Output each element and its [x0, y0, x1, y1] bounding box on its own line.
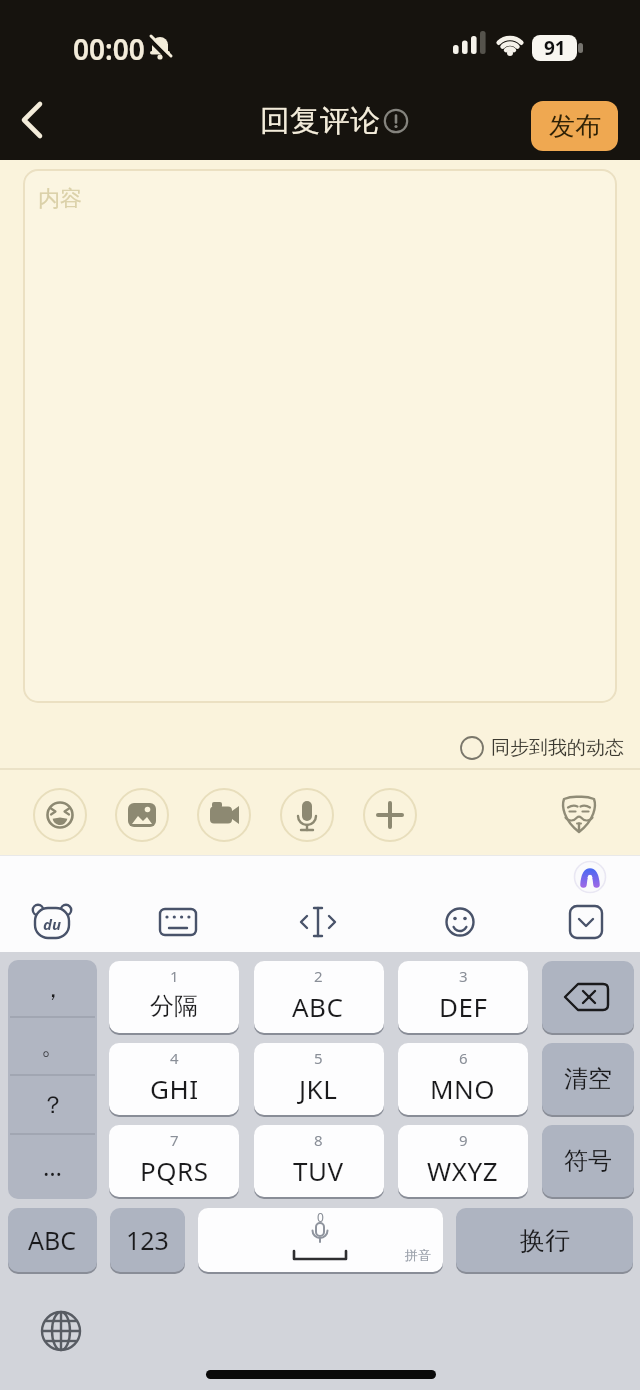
staticText: MNO	[430, 1071, 496, 1106]
button[interactable]	[146, 34, 174, 62]
button[interactable]: ABC	[8, 1208, 97, 1272]
staticText: 同步到我的动态	[491, 736, 624, 760]
staticText: du	[43, 914, 61, 934]
staticText: 。	[41, 1031, 65, 1061]
button[interactable]	[568, 904, 604, 940]
staticText: PQRS	[140, 1153, 209, 1188]
staticText: 2	[314, 966, 323, 984]
staticText: 91	[544, 35, 566, 61]
button[interactable]	[158, 902, 198, 942]
button[interactable]	[34, 789, 86, 841]
button[interactable]	[109, 1043, 239, 1115]
button[interactable]	[364, 789, 416, 841]
staticText: 分隔	[150, 991, 198, 1021]
button[interactable]	[449, 28, 489, 58]
button[interactable]	[398, 1125, 528, 1197]
staticText: 3	[459, 966, 468, 984]
button[interactable]	[10, 96, 54, 144]
button[interactable]: 清空	[542, 1043, 634, 1115]
button[interactable]	[254, 961, 384, 1033]
staticText: 6	[459, 1048, 468, 1066]
staticText: 拼音	[405, 1247, 431, 1263]
staticText: 0	[317, 1209, 324, 1223]
button[interactable]	[109, 1125, 239, 1197]
staticText: ，	[41, 974, 65, 1004]
button[interactable]	[440, 902, 480, 942]
staticText: 发布	[549, 110, 601, 143]
staticText: WXYZ	[427, 1153, 499, 1188]
button[interactable]	[541, 961, 633, 1033]
staticText: 换行	[520, 1225, 570, 1256]
button[interactable]	[398, 961, 528, 1033]
button[interactable]	[383, 108, 409, 134]
staticText: 清空	[564, 1064, 612, 1094]
staticText: …	[43, 1150, 62, 1183]
button[interactable]	[542, 961, 634, 1033]
button[interactable]	[109, 961, 239, 1033]
button[interactable]	[198, 1208, 443, 1272]
staticText: 5	[314, 1048, 323, 1066]
staticText: 7	[170, 1130, 179, 1148]
staticText: ABC	[292, 989, 344, 1024]
button[interactable]: 123	[110, 1208, 185, 1272]
button[interactable]	[254, 1125, 384, 1197]
staticText: 内容	[38, 185, 82, 213]
staticText: DEF	[439, 989, 488, 1024]
button[interactable]: 符号	[542, 1125, 634, 1197]
staticText: TUV	[293, 1153, 344, 1188]
button[interactable]	[398, 1043, 528, 1115]
button[interactable]: 换行	[456, 1208, 633, 1272]
staticText: 1	[170, 966, 179, 984]
button[interactable]	[298, 902, 338, 942]
button[interactable]	[281, 789, 333, 841]
staticText: GHI	[150, 1071, 199, 1106]
button[interactable]	[450, 726, 630, 770]
button[interactable]	[493, 30, 527, 58]
button[interactable]	[8, 960, 97, 1199]
staticText: 123	[126, 1223, 169, 1257]
button[interactable]	[198, 789, 250, 841]
staticText: ？	[41, 1090, 65, 1120]
staticText: 8	[314, 1130, 323, 1148]
staticText: JKL	[299, 1071, 338, 1106]
button[interactable]: 发布	[531, 101, 618, 151]
button[interactable]	[116, 789, 168, 841]
staticText: 4	[170, 1048, 179, 1066]
button[interactable]	[300, 1222, 340, 1252]
button[interactable]: du	[28, 898, 76, 946]
staticText: 回复评论	[260, 102, 380, 140]
staticText: ABC	[28, 1223, 77, 1257]
staticText: 9	[459, 1130, 468, 1148]
button[interactable]	[40, 1310, 82, 1352]
button[interactable]	[574, 861, 606, 893]
staticText: 符号	[564, 1146, 612, 1176]
button[interactable]	[556, 790, 602, 836]
button[interactable]	[254, 1043, 384, 1115]
staticText: 00:00	[73, 30, 145, 66]
